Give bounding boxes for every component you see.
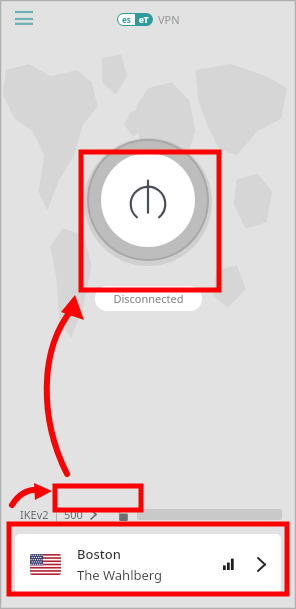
button[interactable]: Disconnected [95, 286, 202, 311]
staticText: es [122, 14, 131, 25]
button[interactable]: Connect [84, 136, 212, 264]
button[interactable]: Menu [10, 5, 38, 33]
button[interactable]: Boston [15, 534, 281, 594]
staticText: IKEv2 [20, 507, 49, 522]
other: Signal strength [223, 558, 235, 570]
staticText: eT [139, 14, 149, 25]
staticText: 500 [64, 507, 83, 522]
staticText: Disconnected [113, 291, 184, 306]
button[interactable]: IKEv2 [20, 507, 97, 522]
staticText: Boston [77, 545, 121, 563]
staticText: The Wahlberg [77, 566, 163, 584]
staticText: VPN [158, 12, 180, 27]
other: Unsecured [117, 508, 129, 521]
